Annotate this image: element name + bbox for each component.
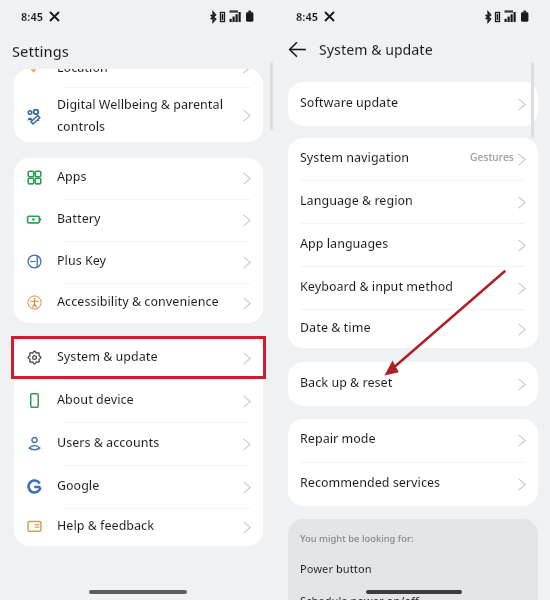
button[interactable]: Accessibility & convenience — [14, 284, 263, 323]
staticText: Plus Key — [57, 252, 107, 269]
staticText: Power button — [300, 561, 372, 576]
staticText: Settings — [12, 41, 69, 61]
button[interactable]: Keyboard & input method — [288, 267, 538, 309]
button[interactable]: About device — [14, 380, 263, 422]
staticText: System & update — [57, 348, 158, 365]
button[interactable]: Google — [14, 466, 263, 508]
staticText: Accessibility & convenience — [57, 293, 219, 310]
button[interactable]: Help & feedback — [14, 509, 263, 546]
staticText: Apps — [57, 168, 87, 185]
staticText: Software update — [300, 94, 399, 111]
staticText: Users & accounts — [57, 434, 160, 451]
button[interactable]: Plus Key — [14, 242, 263, 283]
staticText: Digital Wellbeing & parental — [57, 96, 224, 113]
staticText: controls — [57, 118, 106, 135]
button[interactable]: Recommended services — [288, 463, 538, 506]
button[interactable]: Date & time — [288, 310, 538, 348]
staticText: Help & feedback — [57, 517, 155, 534]
staticText: Back up & reset — [300, 374, 393, 391]
button[interactable]: Language & region — [288, 181, 538, 223]
staticText: 8:45 — [296, 9, 318, 24]
button[interactable]: Battery — [14, 200, 263, 241]
button[interactable]: Software update — [288, 82, 538, 126]
staticText: 8:45 — [21, 9, 43, 24]
button[interactable]: Users & accounts — [14, 423, 263, 465]
staticText: Location — [57, 69, 108, 76]
button[interactable]: System & update — [14, 337, 263, 379]
staticText: Schedule power on/off — [300, 593, 419, 600]
staticText: Recommended services — [300, 474, 441, 491]
staticText: System & update — [319, 40, 433, 59]
button[interactable]: System navigation — [288, 138, 538, 180]
staticText: Gestures — [470, 150, 514, 164]
button[interactable]: Back up & reset — [288, 362, 538, 406]
staticText: System navigation — [300, 149, 410, 166]
staticText: Google — [57, 477, 100, 494]
button[interactable]: App languages — [288, 224, 538, 266]
staticText: Keyboard & input method — [300, 278, 453, 295]
staticText: Repair mode — [300, 430, 376, 447]
staticText: Date & time — [300, 319, 371, 336]
staticText: Battery — [57, 210, 101, 227]
button[interactable]: Back — [284, 36, 310, 62]
staticText: App languages — [300, 235, 389, 252]
staticText: About device — [57, 391, 134, 408]
button[interactable]: Digital Wellbeing & parental — [14, 88, 263, 142]
staticText: Language & region — [300, 192, 413, 209]
button[interactable]: Apps — [14, 158, 263, 199]
button[interactable]: Repair mode — [288, 419, 538, 462]
staticText: You might be looking for: — [300, 532, 414, 545]
